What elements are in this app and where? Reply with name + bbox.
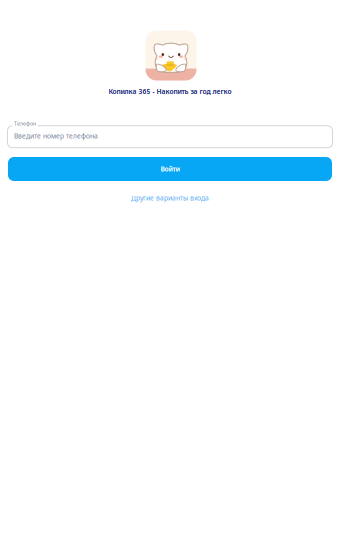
button[interactable]: Войти bbox=[8, 157, 332, 181]
button[interactable]: Другие варианты входа bbox=[0, 192, 340, 204]
staticText: Копилка 365 - Накопить за год легко bbox=[108, 87, 231, 96]
staticText: Телефон bbox=[14, 120, 36, 127]
staticText: Другие варианты входа bbox=[131, 194, 209, 202]
staticText: Введите номер телефона bbox=[14, 131, 98, 140]
staticText: Войти bbox=[160, 165, 179, 173]
